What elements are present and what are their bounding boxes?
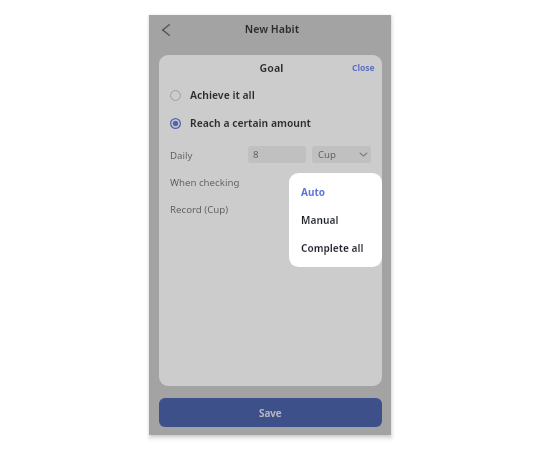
- staticText: 8: [253, 148, 259, 161]
- button[interactable]: Cup: [312, 146, 371, 163]
- button[interactable]: Back: [154, 18, 178, 42]
- button[interactable]: Achieve it all: [159, 84, 382, 106]
- staticText: When checking: [170, 176, 240, 189]
- staticText: Record (Cup): [170, 203, 229, 216]
- button[interactable]: Complete all: [289, 234, 382, 262]
- staticText: Complete all: [301, 241, 364, 255]
- staticText: New Habit: [151, 22, 391, 36]
- staticText: Goal: [160, 61, 382, 75]
- button[interactable]: 8: [248, 146, 306, 163]
- button[interactable]: Save: [159, 398, 382, 427]
- button[interactable]: Auto: [289, 178, 382, 206]
- staticText: Reach a certain amount: [190, 116, 311, 130]
- button[interactable]: Close: [344, 59, 382, 77]
- button[interactable]: Reach a certain amount: [159, 112, 382, 134]
- staticText: Save: [259, 406, 282, 420]
- button[interactable]: Manual: [289, 206, 382, 234]
- staticText: Manual: [301, 213, 339, 227]
- staticText: Achieve it all: [190, 88, 255, 102]
- staticText: Auto: [301, 185, 326, 199]
- staticText: Cup: [318, 148, 337, 161]
- staticText: Daily: [170, 149, 193, 162]
- staticText: Close: [352, 62, 375, 74]
